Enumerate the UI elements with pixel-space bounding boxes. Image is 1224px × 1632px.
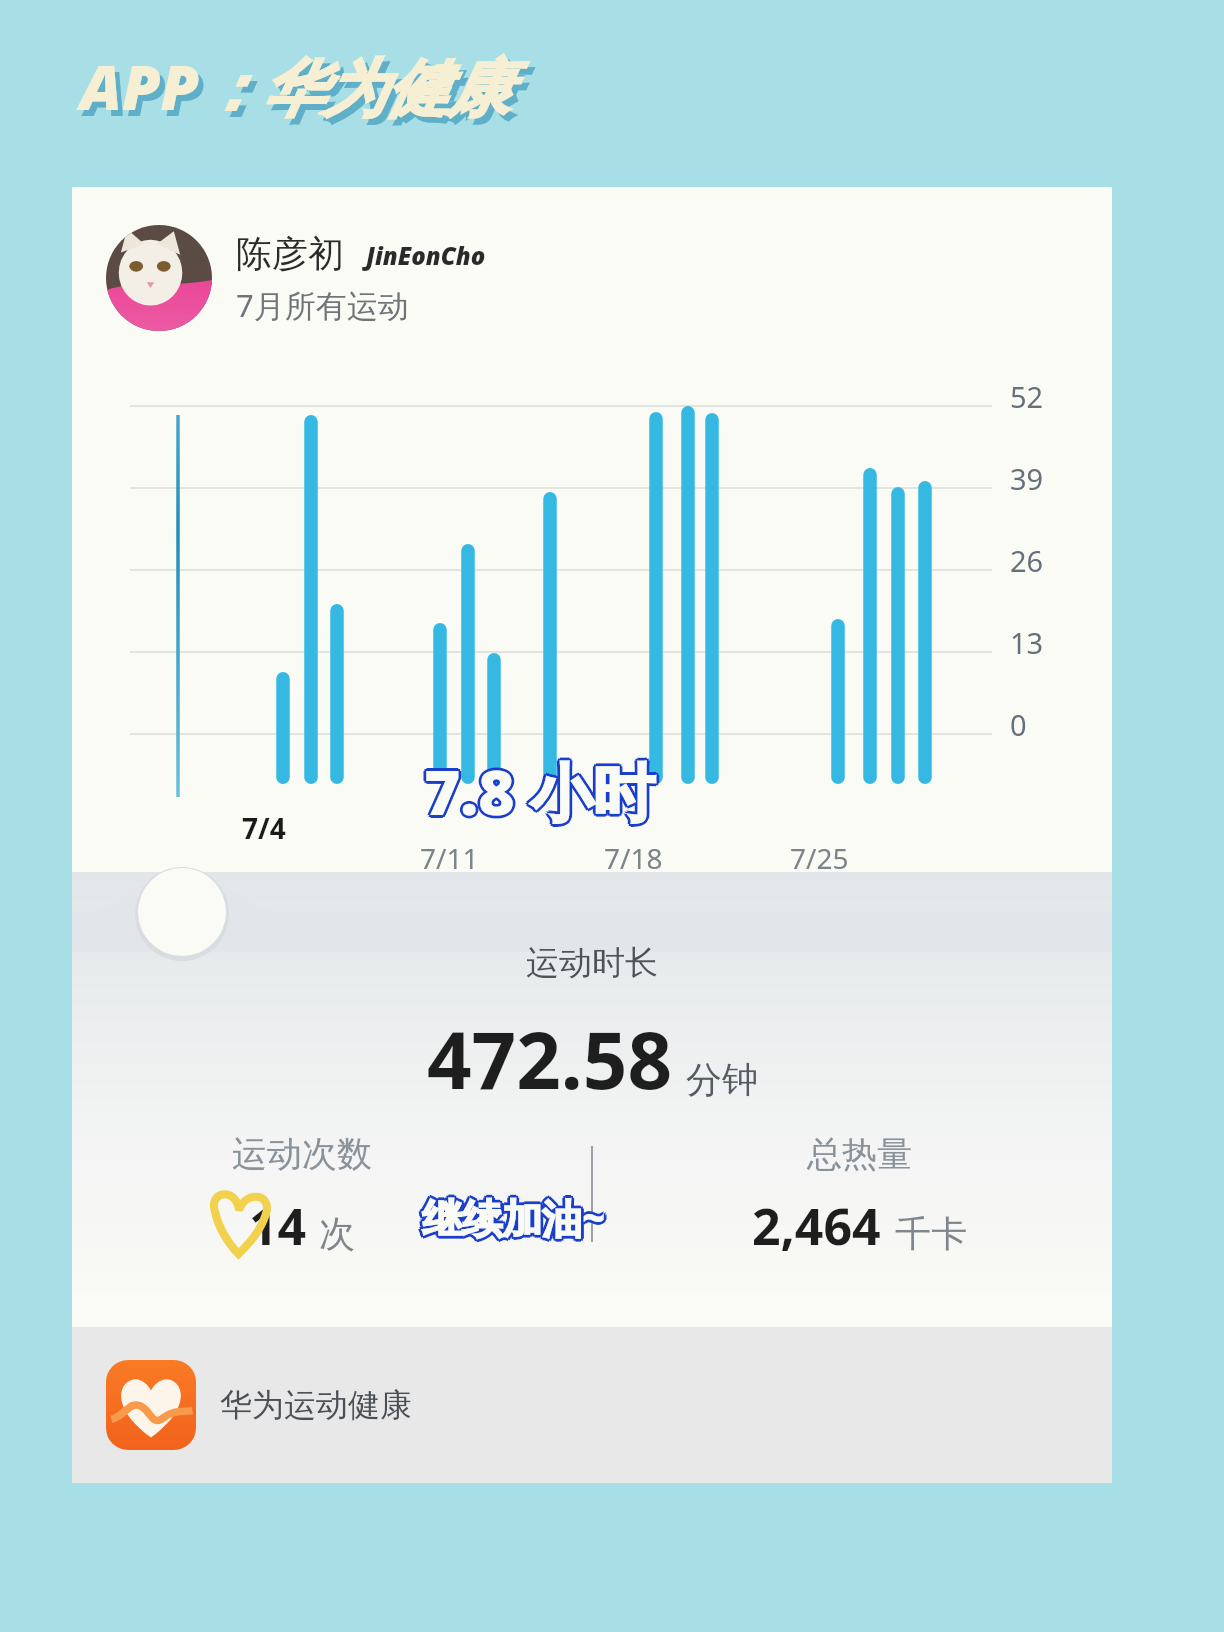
staticText: 继续加油~ [422,1193,606,1248]
staticText: 继续加油~ [422,1190,606,1245]
staticText: 7.8 小时 [424,749,655,834]
staticText: 继续加油~ [420,1188,604,1243]
staticText: 继续加油~ [424,1188,608,1243]
staticText: 次 [319,1211,355,1256]
button[interactable]: Huawei Health [72,1327,1112,1483]
staticText: 7/25 [790,839,849,877]
staticText: 472.58 [427,1006,672,1112]
staticText: 7.8 小时 [426,751,657,836]
staticText: 7月所有运动 [236,284,409,326]
button[interactable]: Profile avatar [106,225,212,331]
staticText: 2,464 [752,1192,881,1260]
staticText: 7.8 小时 [422,751,653,836]
other: Huawei Health [106,1360,196,1450]
staticText: 陈彦初 [236,231,344,276]
staticText: APP：华为健康 [80,44,510,129]
staticText: 7/11 [420,839,479,877]
staticText: 继续加油~ [419,1190,603,1245]
staticText: 运动次数 [232,1132,372,1176]
staticText: 运动时长 [526,942,658,984]
staticText: 继续加油~ [424,1192,608,1247]
staticText: 7.8 小时 [426,747,657,832]
staticText: 13 [1010,623,1044,662]
button[interactable] [72,872,1112,952]
staticText: 分钟 [686,1057,758,1102]
staticText: 0 [1010,705,1027,744]
staticText: 26 [1010,541,1044,580]
staticText: 7.8 小时 [421,749,652,834]
staticText: 7.8 小时 [424,752,655,837]
staticText: 总热量 [807,1132,912,1176]
staticText: 7.8 小时 [424,746,655,831]
staticText: 继续加油~ [425,1190,609,1245]
staticText: 继续加油~ [420,1192,604,1247]
staticText: 千卡 [895,1211,967,1256]
staticText: 华为运动健康 [220,1385,412,1425]
staticText: 52 [1010,377,1044,416]
staticText: 继续加油~ [422,1187,606,1242]
staticText: 14 [249,1192,307,1260]
staticText: 7/4 [242,809,286,847]
staticText: JinEonCho [366,239,486,272]
staticText: APP：华为健康 [85,50,515,135]
staticText: 7.8 小时 [427,749,658,834]
staticText: 39 [1010,459,1044,498]
staticText: 7.8 小时 [422,747,653,832]
staticText: 7/18 [604,839,663,877]
